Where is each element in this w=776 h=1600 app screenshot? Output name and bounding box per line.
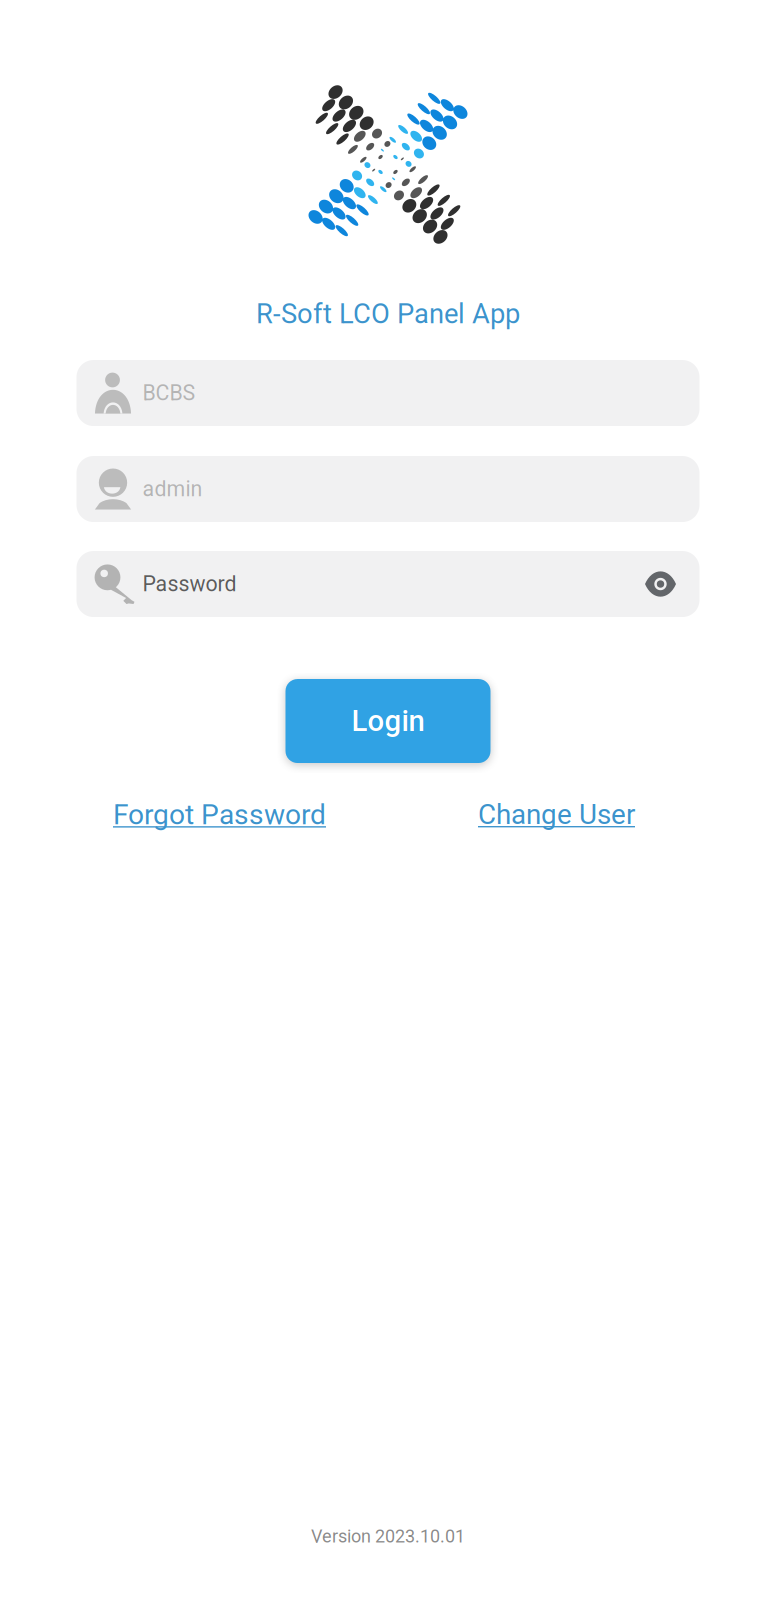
staticText: Change User <box>478 798 635 831</box>
staticText: Login <box>351 704 424 738</box>
staticText: Password <box>142 571 236 596</box>
staticText: admin <box>142 476 202 501</box>
button[interactable]: Login <box>285 679 490 763</box>
button[interactable]: Forgot Password <box>51 798 388 831</box>
staticText: BCBS <box>142 380 195 405</box>
staticText: R-Soft LCO Panel App <box>256 298 520 330</box>
button[interactable]: Change User <box>388 798 725 831</box>
button[interactable]: Show password <box>634 558 686 610</box>
staticText: Version 2023.10.01 <box>311 1526 465 1547</box>
staticText: Forgot Password <box>113 798 326 831</box>
